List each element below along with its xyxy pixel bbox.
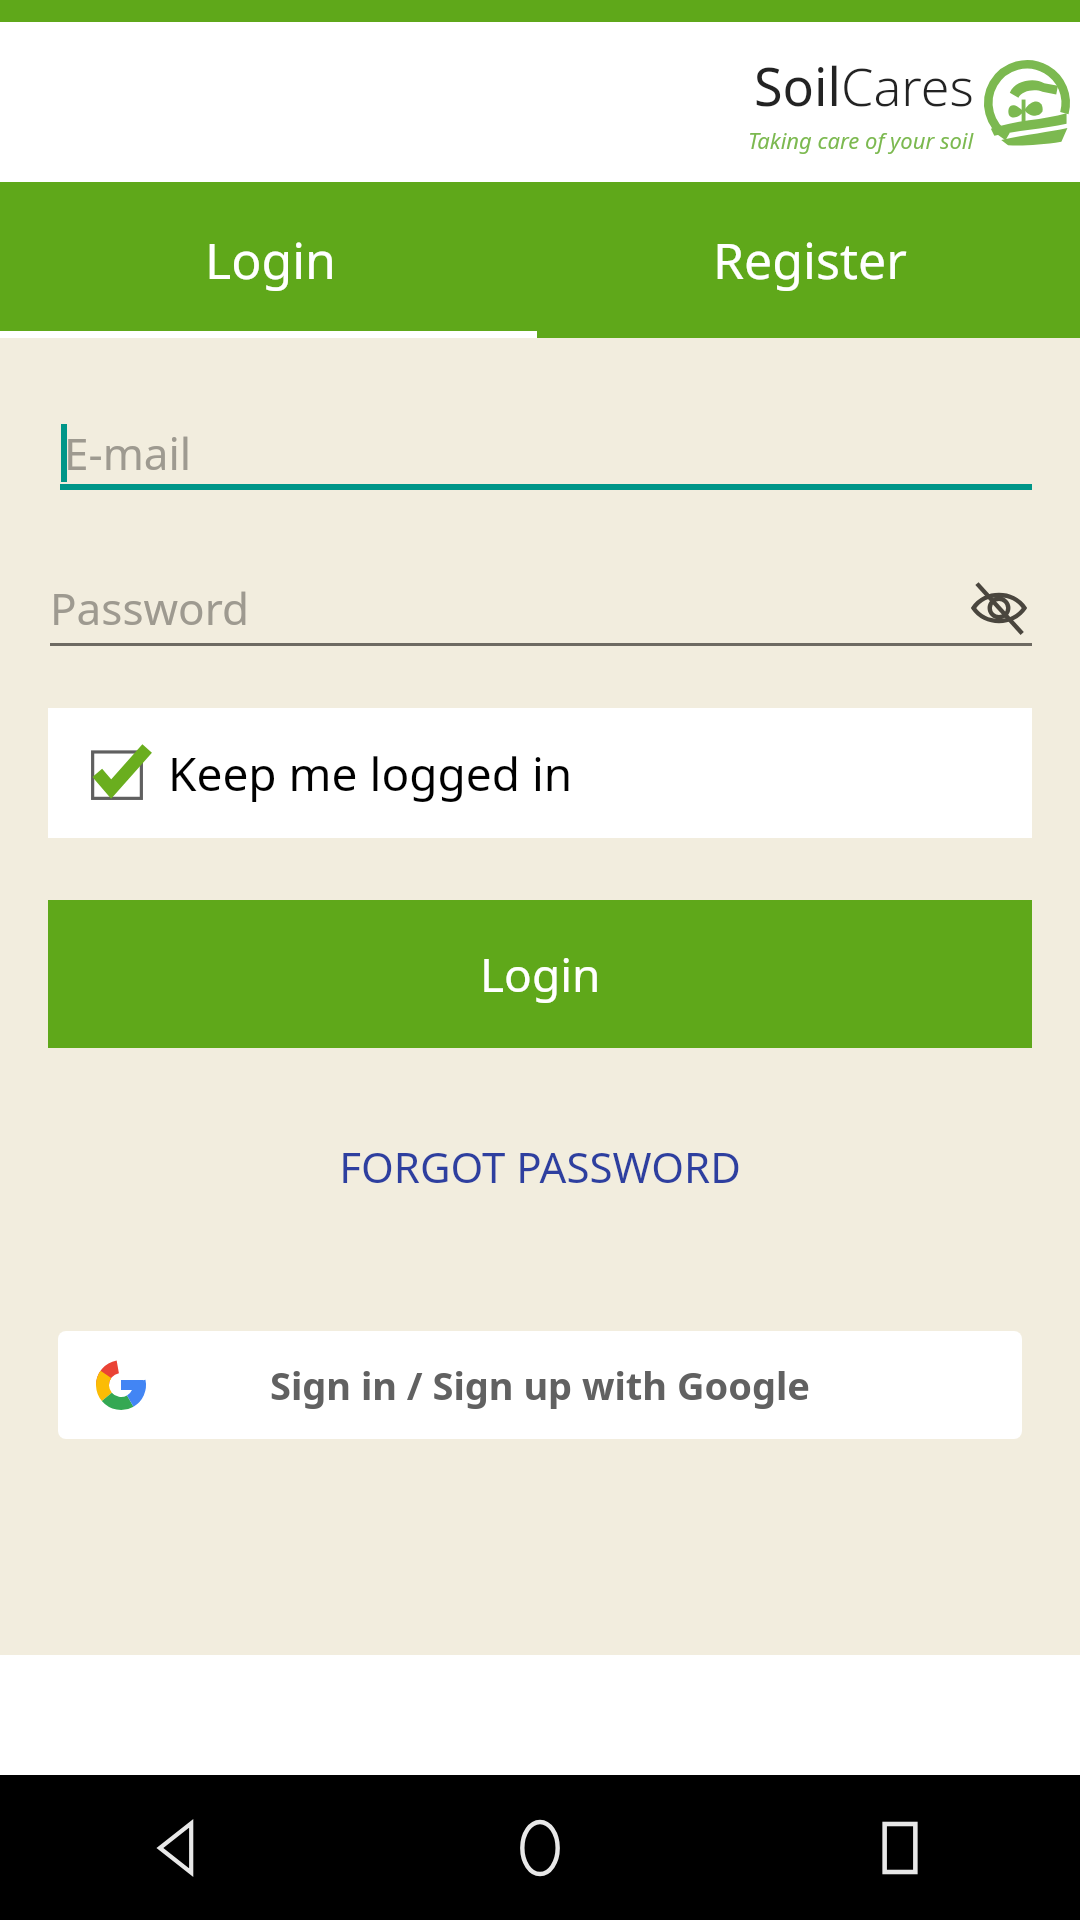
button[interactable]: Sign in / Sign up with Google [58, 1331, 1022, 1439]
button[interactable]: Register [540, 182, 1080, 338]
button[interactable]: Login [48, 900, 1032, 1048]
staticText: Taking care of your soil [748, 125, 974, 155]
staticText: Soil [754, 50, 841, 121]
staticText: Login [205, 226, 336, 294]
button[interactable]: Recent apps [720, 1775, 1080, 1920]
button[interactable]: Home [360, 1775, 720, 1920]
staticText: Register [713, 226, 907, 294]
staticText: Cares [841, 50, 974, 121]
staticText: Login [480, 943, 601, 1006]
staticText: FORGOT PASSWORD [339, 1138, 741, 1195]
button[interactable]: E-mail [60, 416, 1032, 490]
staticText: Keep me logged in [168, 742, 573, 805]
button[interactable]: Password [50, 570, 1032, 646]
button[interactable]: Keep me logged in [48, 708, 1032, 838]
staticText: Sign in / Sign up with Google [270, 1359, 810, 1411]
staticText: E-mail [64, 423, 192, 483]
button[interactable]: Login [0, 182, 540, 338]
button[interactable]: FORGOT PASSWORD [339, 1138, 741, 1195]
button[interactable]: Show password [966, 575, 1032, 641]
staticText: Password [50, 578, 250, 638]
button[interactable]: Back [0, 1775, 360, 1920]
